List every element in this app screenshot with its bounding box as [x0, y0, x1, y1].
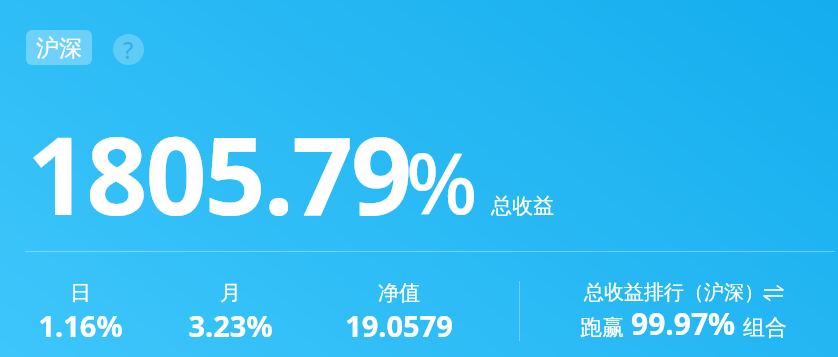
- button[interactable]: 日: [10, 276, 150, 346]
- other: Switch ranking market: [764, 285, 783, 300]
- button[interactable]: 净值: [329, 276, 469, 346]
- staticText: 1.16%: [38, 306, 123, 345]
- staticText: 99.97%: [631, 303, 736, 344]
- staticText: 3.23%: [188, 306, 273, 345]
- button[interactable]: Help: [113, 34, 144, 65]
- staticText: 总收益排行（沪深）: [584, 280, 764, 305]
- staticText: 总收益: [491, 193, 554, 219]
- staticText: ?: [123, 34, 134, 65]
- staticText: 日: [70, 280, 91, 306]
- staticText: %: [406, 124, 478, 238]
- staticText: 1805.79: [27, 101, 411, 247]
- staticText: 沪深: [36, 34, 82, 63]
- staticText: 跑赢: [580, 314, 624, 342]
- button[interactable]: 沪深: [26, 30, 92, 65]
- staticText: 19.0579: [345, 306, 453, 345]
- staticText: 净值: [378, 280, 420, 306]
- button[interactable]: 月: [160, 276, 300, 346]
- staticText: 月: [220, 280, 241, 306]
- staticText: 组合: [743, 314, 787, 342]
- button[interactable]: 总收益排行（沪深）: [536, 280, 831, 356]
